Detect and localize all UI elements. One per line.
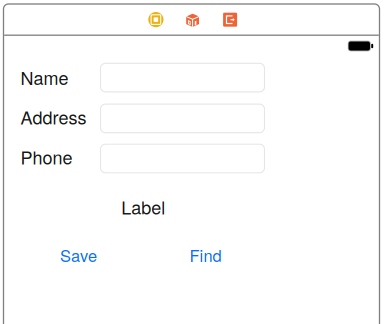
- staticText: Address: [20, 104, 86, 129]
- button[interactable]: Save: [50, 240, 106, 270]
- button[interactable]: View controller: [148, 12, 164, 28]
- staticText: Label: [121, 194, 165, 220]
- button[interactable]: Exit: [222, 12, 238, 28]
- button[interactable]: Find: [177, 240, 233, 270]
- staticText: Find: [189, 243, 221, 267]
- staticText: Name: [20, 64, 68, 90]
- button[interactable]: First responder: [185, 12, 201, 28]
- staticText: Phone: [20, 144, 72, 170]
- staticText: Save: [60, 243, 97, 267]
